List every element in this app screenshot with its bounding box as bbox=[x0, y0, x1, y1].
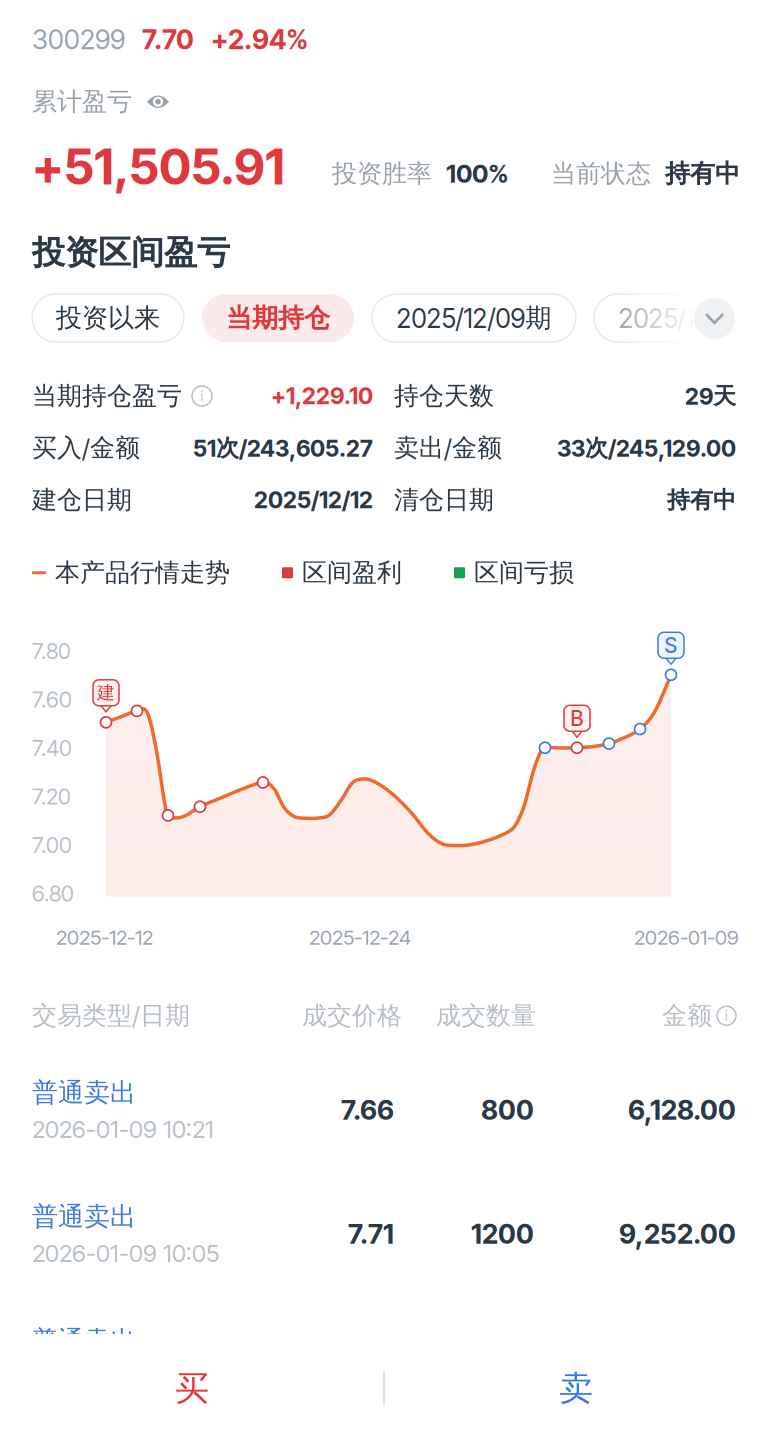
staticText: 持有中 bbox=[665, 158, 740, 189]
staticText: 7.66 bbox=[341, 1094, 394, 1126]
staticText: 投资区间盈亏 bbox=[32, 232, 230, 274]
staticText: +51,505.91 bbox=[32, 137, 285, 196]
staticText: 7.70 bbox=[142, 23, 194, 56]
button[interactable]: 普通卖出 bbox=[32, 1188, 736, 1280]
staticText: 2026-01-09 10:05 bbox=[32, 1239, 219, 1268]
staticText: 清仓日期 bbox=[394, 484, 494, 516]
button[interactable]: 投资以来 bbox=[32, 294, 184, 342]
staticText: 800 bbox=[481, 1094, 534, 1126]
staticText: 投资胜率 bbox=[332, 158, 432, 189]
button[interactable]: 买 bbox=[0, 1334, 384, 1443]
staticText: 持有中 bbox=[667, 485, 736, 514]
staticText: 本产品行情走势 bbox=[55, 557, 230, 588]
staticText: 成交价格 bbox=[302, 1000, 402, 1031]
staticText: 1200 bbox=[471, 1218, 534, 1250]
staticText: 6,128.00 bbox=[628, 1094, 736, 1126]
button[interactable]: 当期持仓 bbox=[202, 294, 354, 342]
button[interactable]: 普通卖出 bbox=[32, 1064, 736, 1156]
staticText: +2.94% bbox=[211, 23, 308, 56]
staticText: 普通卖出 bbox=[32, 1200, 136, 1233]
staticText: 2025-12-12 bbox=[56, 925, 153, 950]
staticText: 7.40 bbox=[32, 735, 72, 761]
staticText: 卖 bbox=[559, 1367, 593, 1410]
staticText: 2026-01-09 10:21 bbox=[32, 1115, 214, 1144]
button[interactable]: 2025/12/09期 bbox=[372, 294, 576, 342]
staticText: 交易类型/日期 bbox=[32, 1000, 190, 1031]
staticText: 9,252.00 bbox=[619, 1218, 736, 1250]
staticText: B bbox=[570, 706, 583, 731]
staticText: 普通卖出 bbox=[32, 1324, 136, 1357]
staticText: 区间亏损 bbox=[474, 557, 574, 588]
staticText: 7.60 bbox=[32, 686, 72, 713]
staticText: 300299 bbox=[32, 23, 125, 56]
staticText: 2025-12-24 bbox=[309, 925, 411, 950]
staticText: 当期持仓 bbox=[226, 302, 330, 334]
staticText: 当前状态 bbox=[551, 158, 651, 189]
staticText: i bbox=[725, 1007, 728, 1024]
staticText: 投资以来 bbox=[56, 302, 160, 334]
staticText: 7.80 bbox=[32, 638, 71, 664]
staticText: 当期持仓盈亏 bbox=[32, 380, 182, 412]
staticText: 持仓天数 bbox=[394, 380, 494, 412]
button[interactable]: 普通卖出 bbox=[32, 1312, 736, 1404]
staticText: 2025/12/09期 bbox=[396, 302, 551, 334]
staticText: 买入/金额 bbox=[32, 432, 140, 464]
button[interactable]: 2025/12/08期 bbox=[594, 294, 768, 342]
staticText: 51次/243,605.27 bbox=[193, 433, 373, 462]
staticText: S bbox=[664, 633, 677, 658]
staticText: i bbox=[200, 387, 203, 405]
staticText: 卖出/金额 bbox=[394, 432, 502, 464]
staticText: 金额 bbox=[662, 1000, 712, 1031]
button[interactable]: 选择期数 bbox=[694, 298, 735, 339]
staticText: 7.00 bbox=[32, 832, 72, 858]
staticText: 100% bbox=[446, 159, 509, 189]
staticText: 2025/12/12 bbox=[254, 486, 373, 514]
staticText: 2026-01-09 bbox=[634, 925, 739, 950]
staticText: 6.80 bbox=[32, 880, 74, 907]
staticText: 33次/245,129.00 bbox=[557, 433, 736, 462]
staticText: 区间盈利 bbox=[302, 557, 402, 588]
staticText: 2025/12/08期 bbox=[618, 302, 768, 334]
staticText: 普通卖出 bbox=[32, 1076, 136, 1109]
staticText: 2026-01-09 09:58 bbox=[32, 1363, 224, 1392]
staticText: 累计盈亏 bbox=[32, 86, 132, 117]
staticText: 建 bbox=[97, 681, 115, 704]
staticText: 成交数量 bbox=[436, 1000, 536, 1031]
staticText: +1,229.10 bbox=[271, 382, 373, 410]
staticText: 建仓日期 bbox=[32, 484, 132, 516]
staticText: 29天 bbox=[685, 381, 736, 410]
staticText: 7.71 bbox=[348, 1218, 394, 1250]
button[interactable]: 卖 bbox=[384, 1334, 768, 1443]
staticText: 买 bbox=[175, 1367, 209, 1410]
staticText: 7.20 bbox=[32, 783, 71, 810]
